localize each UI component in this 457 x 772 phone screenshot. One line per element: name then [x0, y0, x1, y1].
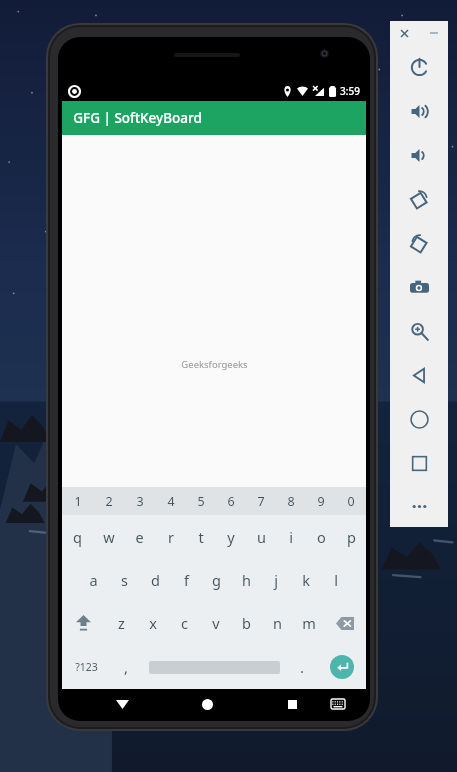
staticText: w [103, 527, 115, 547]
button[interactable]: g [201, 558, 231, 601]
staticText: 4 [167, 493, 175, 510]
button[interactable]: m [293, 601, 324, 645]
staticText: 9 [317, 493, 325, 510]
button[interactable]: 0 [336, 487, 366, 515]
button[interactable]: 4 [155, 487, 186, 515]
staticText: o [317, 527, 326, 547]
button[interactable]: Zoom [390, 309, 448, 353]
staticText: l [334, 570, 338, 590]
staticText: y [227, 527, 235, 547]
button[interactable]: Minimize [419, 21, 448, 45]
button[interactable]: q [62, 515, 93, 558]
button[interactable]: Power [390, 45, 448, 89]
staticText: h [242, 570, 251, 590]
button[interactable]: Backspace [324, 601, 366, 645]
button[interactable]: 2 [93, 487, 124, 515]
staticText: 2 [105, 493, 113, 510]
button[interactable]: d [140, 558, 171, 601]
staticText: 7 [257, 493, 265, 510]
button[interactable]: Volume down [390, 133, 448, 177]
button[interactable]: f [171, 558, 201, 601]
button[interactable]: 7 [246, 487, 276, 515]
staticText: v [212, 613, 220, 633]
staticText: a [89, 570, 98, 590]
staticText: p [347, 527, 356, 547]
staticText: z [118, 613, 125, 633]
button[interactable]: More [390, 485, 448, 527]
button[interactable]: u [246, 515, 276, 558]
button[interactable]: Overview [390, 441, 448, 485]
staticText: f [184, 570, 189, 590]
staticText: i [289, 527, 293, 547]
staticText: q [73, 527, 82, 547]
button[interactable]: Hide keyboard [107, 689, 137, 719]
button[interactable]: c [169, 601, 200, 645]
button[interactable]: b [231, 601, 262, 645]
staticText: k [302, 570, 310, 590]
button[interactable]: 3 [124, 487, 155, 515]
staticText: x [149, 613, 157, 633]
button[interactable]: Close [390, 21, 419, 45]
button[interactable]: n [262, 601, 293, 645]
button[interactable]: Back [390, 353, 448, 397]
staticText: GFG | SoftKeyBoard [73, 109, 202, 127]
staticText: . [300, 657, 304, 677]
button[interactable]: o [306, 515, 336, 558]
button[interactable]: Recents [277, 689, 307, 719]
button[interactable]: 5 [186, 487, 216, 515]
staticText: n [273, 613, 282, 633]
button[interactable]: t [186, 515, 216, 558]
staticText: Geeksforgeeks [181, 358, 248, 371]
button[interactable]: ?123 [62, 645, 111, 689]
button[interactable]: Home [390, 397, 448, 441]
staticText: 5 [197, 493, 205, 510]
button[interactable]: k [291, 558, 321, 601]
staticText: j [274, 570, 278, 590]
button[interactable]: e [124, 515, 155, 558]
staticText: 6 [227, 493, 235, 510]
button[interactable]: Rotate left [390, 177, 448, 221]
staticText: b [242, 613, 251, 633]
staticText: 0 [347, 493, 355, 510]
button[interactable]: GFG | SoftKeyBoard [62, 101, 366, 135]
button[interactable]: l [321, 558, 351, 601]
button[interactable]: s [109, 558, 140, 601]
button[interactable]: z [105, 601, 137, 645]
staticText: 3:59 [340, 84, 360, 98]
button[interactable]: Geeksforgeeks [181, 358, 248, 371]
button[interactable]: h [231, 558, 261, 601]
button[interactable]: Space [141, 645, 287, 689]
staticText: c [181, 613, 188, 633]
button[interactable]: r [155, 515, 186, 558]
button[interactable]: w [93, 515, 124, 558]
button[interactable]: Enter [317, 645, 366, 689]
staticText: , [124, 657, 128, 677]
staticText: u [257, 527, 266, 547]
button[interactable]: x [137, 601, 169, 645]
button[interactable]: Screenshot [390, 265, 448, 309]
button[interactable]: 9 [306, 487, 336, 515]
staticText: d [151, 570, 160, 590]
button[interactable]: Switch keyboard [323, 689, 353, 719]
button[interactable]: y [216, 515, 246, 558]
button[interactable]: p [336, 515, 366, 558]
button[interactable]: j [261, 558, 291, 601]
button[interactable]: a [78, 558, 109, 601]
staticText: 3 [136, 493, 144, 510]
staticText: e [135, 527, 144, 547]
button[interactable]: . [287, 645, 317, 689]
staticText: m [302, 613, 316, 633]
button[interactable]: 8 [276, 487, 306, 515]
button[interactable]: Shift [62, 601, 105, 645]
button[interactable]: , [111, 645, 141, 689]
button[interactable]: i [276, 515, 306, 558]
staticText: ?123 [75, 660, 98, 674]
button[interactable]: Volume up [390, 89, 448, 133]
button[interactable]: Rotate right [390, 221, 448, 265]
button[interactable]: v [200, 601, 231, 645]
button[interactable]: 6 [216, 487, 246, 515]
staticText: 1 [74, 493, 82, 510]
staticText: t [198, 527, 204, 547]
button[interactable]: 1 [62, 487, 93, 515]
button[interactable]: Home [192, 689, 222, 719]
